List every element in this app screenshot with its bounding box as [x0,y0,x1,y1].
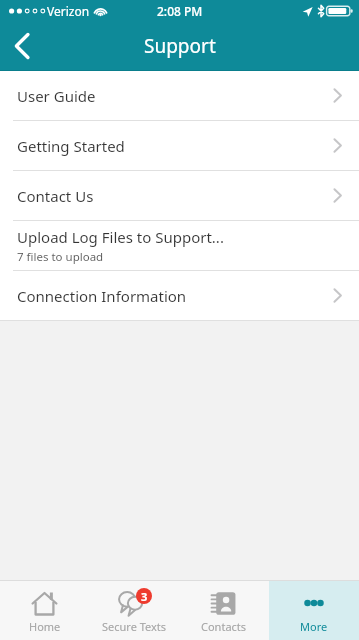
staticText: Verizon [47,3,90,19]
staticText: Connection Information [17,286,187,306]
staticText: Support [144,33,216,59]
button[interactable]: Getting Started [0,121,359,170]
staticText: 2:08 PM [157,3,203,19]
button[interactable]: More [269,581,359,640]
button[interactable]: 3 [89,581,179,640]
button[interactable]: Contact Us [0,171,359,220]
staticText: More [300,619,328,634]
staticText: Contacts [201,619,247,634]
staticText: Upload Log Files to Support... [17,227,224,247]
staticText: 7 files to upload [17,249,104,265]
button[interactable]: User Guide [0,71,359,120]
button[interactable]: Connection Information [0,271,359,320]
staticText: Secure Texts [102,619,167,634]
staticText: 3 [141,589,148,604]
staticText: Home [29,619,61,634]
staticText: Getting Started [17,136,125,156]
button[interactable]: Back [0,24,44,68]
button[interactable]: Contacts [179,581,269,640]
staticText: User Guide [17,86,96,106]
button[interactable]: Upload Log Files to Support... [0,221,359,270]
staticText: Contact Us [17,186,94,206]
button[interactable]: Home [0,581,89,640]
